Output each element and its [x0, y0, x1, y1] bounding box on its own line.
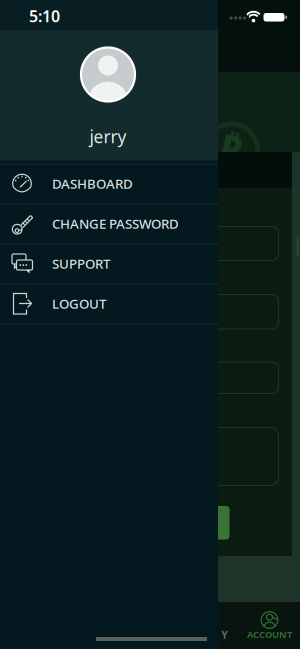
staticText: LOGOUT: [52, 295, 106, 312]
button[interactable]: Y: [179, 602, 229, 649]
staticText: ₿: [219, 122, 242, 175]
button[interactable]: CHANGE PASSWORD: [0, 203, 218, 243]
staticText: 5:10: [29, 5, 60, 27]
staticText: ACCOUNT: [247, 628, 292, 641]
button[interactable]: SUPPORT: [0, 243, 218, 283]
staticText: SUPPORT: [52, 255, 110, 272]
staticText: CHANGE PASSWORD: [52, 215, 179, 232]
button[interactable]: DASHBOARD: [0, 163, 218, 203]
staticText: Y: [221, 627, 228, 642]
button[interactable]: ACCOUNT: [238, 602, 300, 649]
staticText: DASHBOARD: [52, 175, 133, 192]
staticText: jerry: [89, 125, 126, 148]
button[interactable]: LOGOUT: [0, 283, 218, 323]
